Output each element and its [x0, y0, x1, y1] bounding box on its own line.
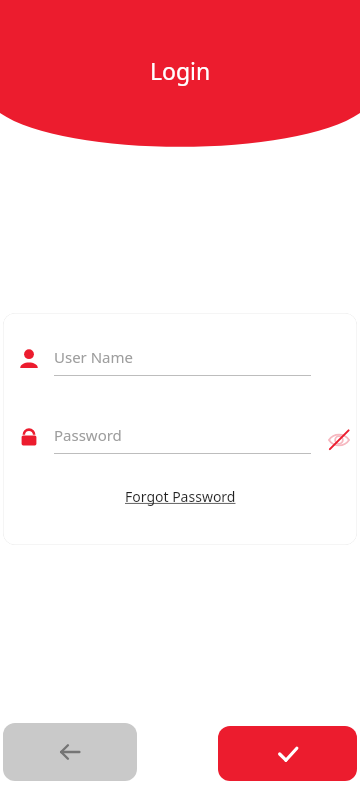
button[interactable]: Confirm [218, 726, 357, 781]
button[interactable]: Password [3, 425, 357, 463]
staticText: User Name [54, 347, 134, 367]
staticText: Password [54, 425, 122, 445]
button[interactable]: User Name [3, 347, 357, 385]
button[interactable]: Toggle password visibility [324, 425, 354, 455]
staticText: Forgot Password [125, 487, 236, 506]
button[interactable]: Forgot Password [119, 485, 242, 508]
button[interactable]: Back [3, 723, 137, 781]
staticText: Login [150, 55, 211, 86]
